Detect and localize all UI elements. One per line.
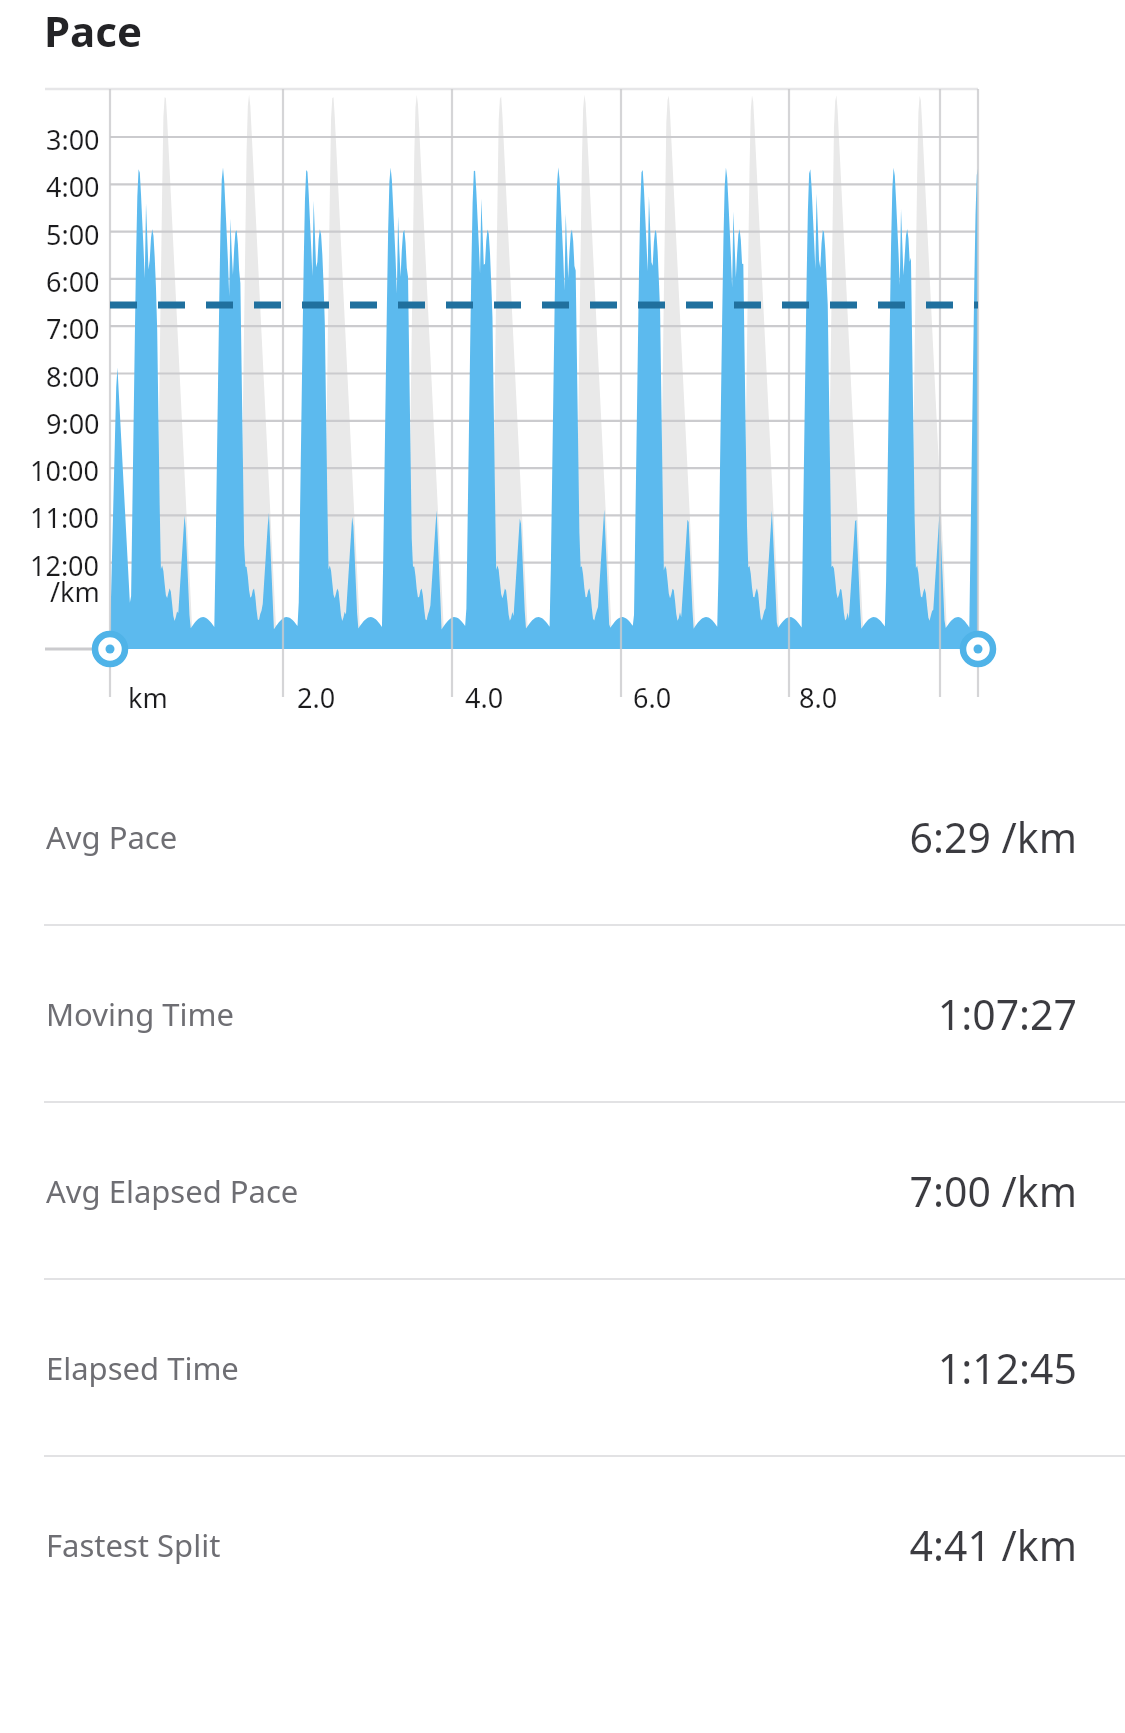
staticText: 6.0	[633, 679, 672, 716]
staticText: 6:29 /km	[909, 809, 1077, 865]
staticText: 4.0	[465, 679, 504, 716]
button[interactable]: Elapsed Time	[0, 1280, 1125, 1455]
staticText: /km	[50, 573, 100, 610]
staticText: 7:00	[46, 310, 100, 347]
button[interactable]: Moving Time	[0, 926, 1125, 1101]
staticText: 4:00	[46, 168, 100, 205]
staticText: Pace	[44, 2, 142, 59]
staticText: Avg Pace	[46, 816, 178, 858]
staticText: 10:00	[30, 452, 100, 489]
button[interactable]: Avg Elapsed Pace	[0, 1103, 1125, 1278]
button[interactable]: Avg Pace	[0, 749, 1125, 924]
staticText: 8.0	[799, 679, 838, 716]
staticText: 2.0	[297, 679, 336, 716]
staticText: 3:00	[46, 121, 100, 158]
staticText: Fastest Split	[46, 1524, 221, 1566]
staticText: 4:41 /km	[909, 1517, 1077, 1573]
staticText: 7:00 /km	[909, 1163, 1077, 1219]
staticText: 6:00	[46, 263, 100, 300]
staticText: 12:00	[30, 547, 100, 584]
staticText: 1:07:27	[937, 986, 1077, 1042]
staticText: Avg Elapsed Pace	[46, 1170, 299, 1212]
staticText: Moving Time	[46, 993, 234, 1035]
staticText: 8:00	[46, 358, 100, 395]
staticText: 9:00	[46, 405, 100, 442]
staticText: 1:12:45	[937, 1340, 1077, 1396]
button[interactable]: Fastest Split	[0, 1457, 1125, 1632]
staticText: Elapsed Time	[46, 1347, 239, 1389]
staticText: 11:00	[30, 499, 100, 536]
staticText: km	[128, 679, 168, 716]
staticText: 5:00	[46, 216, 100, 253]
